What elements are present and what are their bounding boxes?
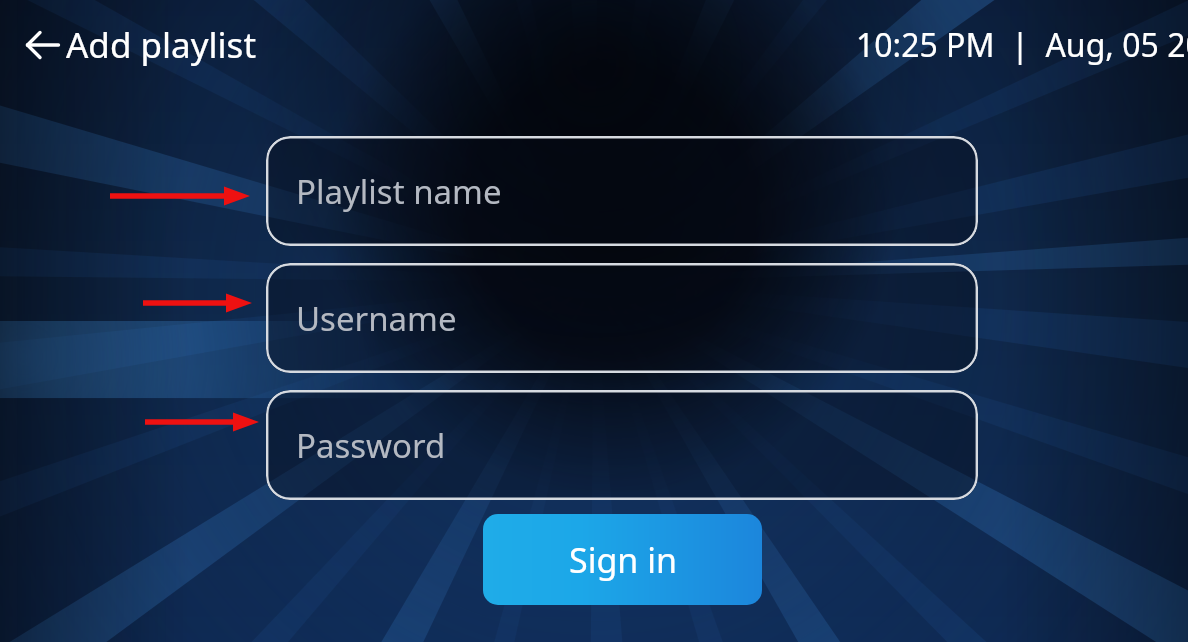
button[interactable]: Back, Add playlist: [16, 14, 262, 76]
button[interactable]: Sign in: [483, 514, 762, 605]
staticText: Username: [296, 296, 457, 341]
button[interactable]: Password: [266, 390, 978, 500]
staticText: Add playlist: [66, 21, 257, 69]
staticText: Password: [296, 423, 446, 468]
staticText: Playlist name: [296, 169, 502, 214]
staticText: Sign in: [569, 537, 677, 583]
button[interactable]: Playlist name: [266, 136, 978, 246]
staticText: 10:25 PM | Aug, 05 2025: [856, 23, 1188, 67]
button[interactable]: Username: [266, 263, 978, 373]
